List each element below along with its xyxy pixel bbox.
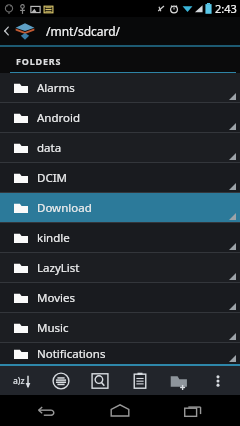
staticText: 2:43: [215, 1, 237, 16]
staticText: Movies: [37, 290, 75, 306]
button[interactable]: Movies: [0, 283, 240, 312]
button[interactable]: Home: [94, 395, 146, 426]
button[interactable]: Clipboard: [123, 366, 157, 395]
button[interactable]: Music: [0, 313, 240, 342]
staticText: /mnt/sdcard/: [46, 23, 121, 39]
button[interactable]: kindle: [0, 223, 240, 252]
button[interactable]: New folder: [162, 366, 196, 395]
staticText: DCIM: [37, 170, 67, 186]
button[interactable]: Recent apps: [167, 395, 219, 426]
staticText: Music: [37, 320, 69, 336]
staticText: data: [37, 140, 62, 156]
button[interactable]: Android: [0, 103, 240, 132]
button[interactable]: Search: [83, 366, 117, 395]
staticText: FOLDERS: [16, 55, 62, 67]
button[interactable]: View mode: [44, 366, 78, 395]
staticText: a)z: [13, 375, 25, 387]
staticText: Notifications: [37, 346, 106, 362]
staticText: LazyList: [37, 260, 80, 276]
staticText: Android: [37, 110, 81, 126]
button[interactable]: Notifications: [0, 343, 240, 364]
button[interactable]: Alarms: [0, 73, 240, 102]
button[interactable]: More options: [201, 366, 235, 395]
staticText: Alarms: [37, 80, 75, 96]
staticText: kindle: [37, 230, 70, 246]
staticText: Download: [37, 200, 92, 216]
button[interactable]: Sort: [5, 366, 39, 395]
button[interactable]: Up: [0, 17, 40, 45]
button[interactable]: Back: [21, 395, 73, 426]
button[interactable]: DCIM: [0, 163, 240, 192]
button[interactable]: Download: [0, 193, 240, 222]
button[interactable]: data: [0, 133, 240, 162]
button[interactable]: LazyList: [0, 253, 240, 282]
